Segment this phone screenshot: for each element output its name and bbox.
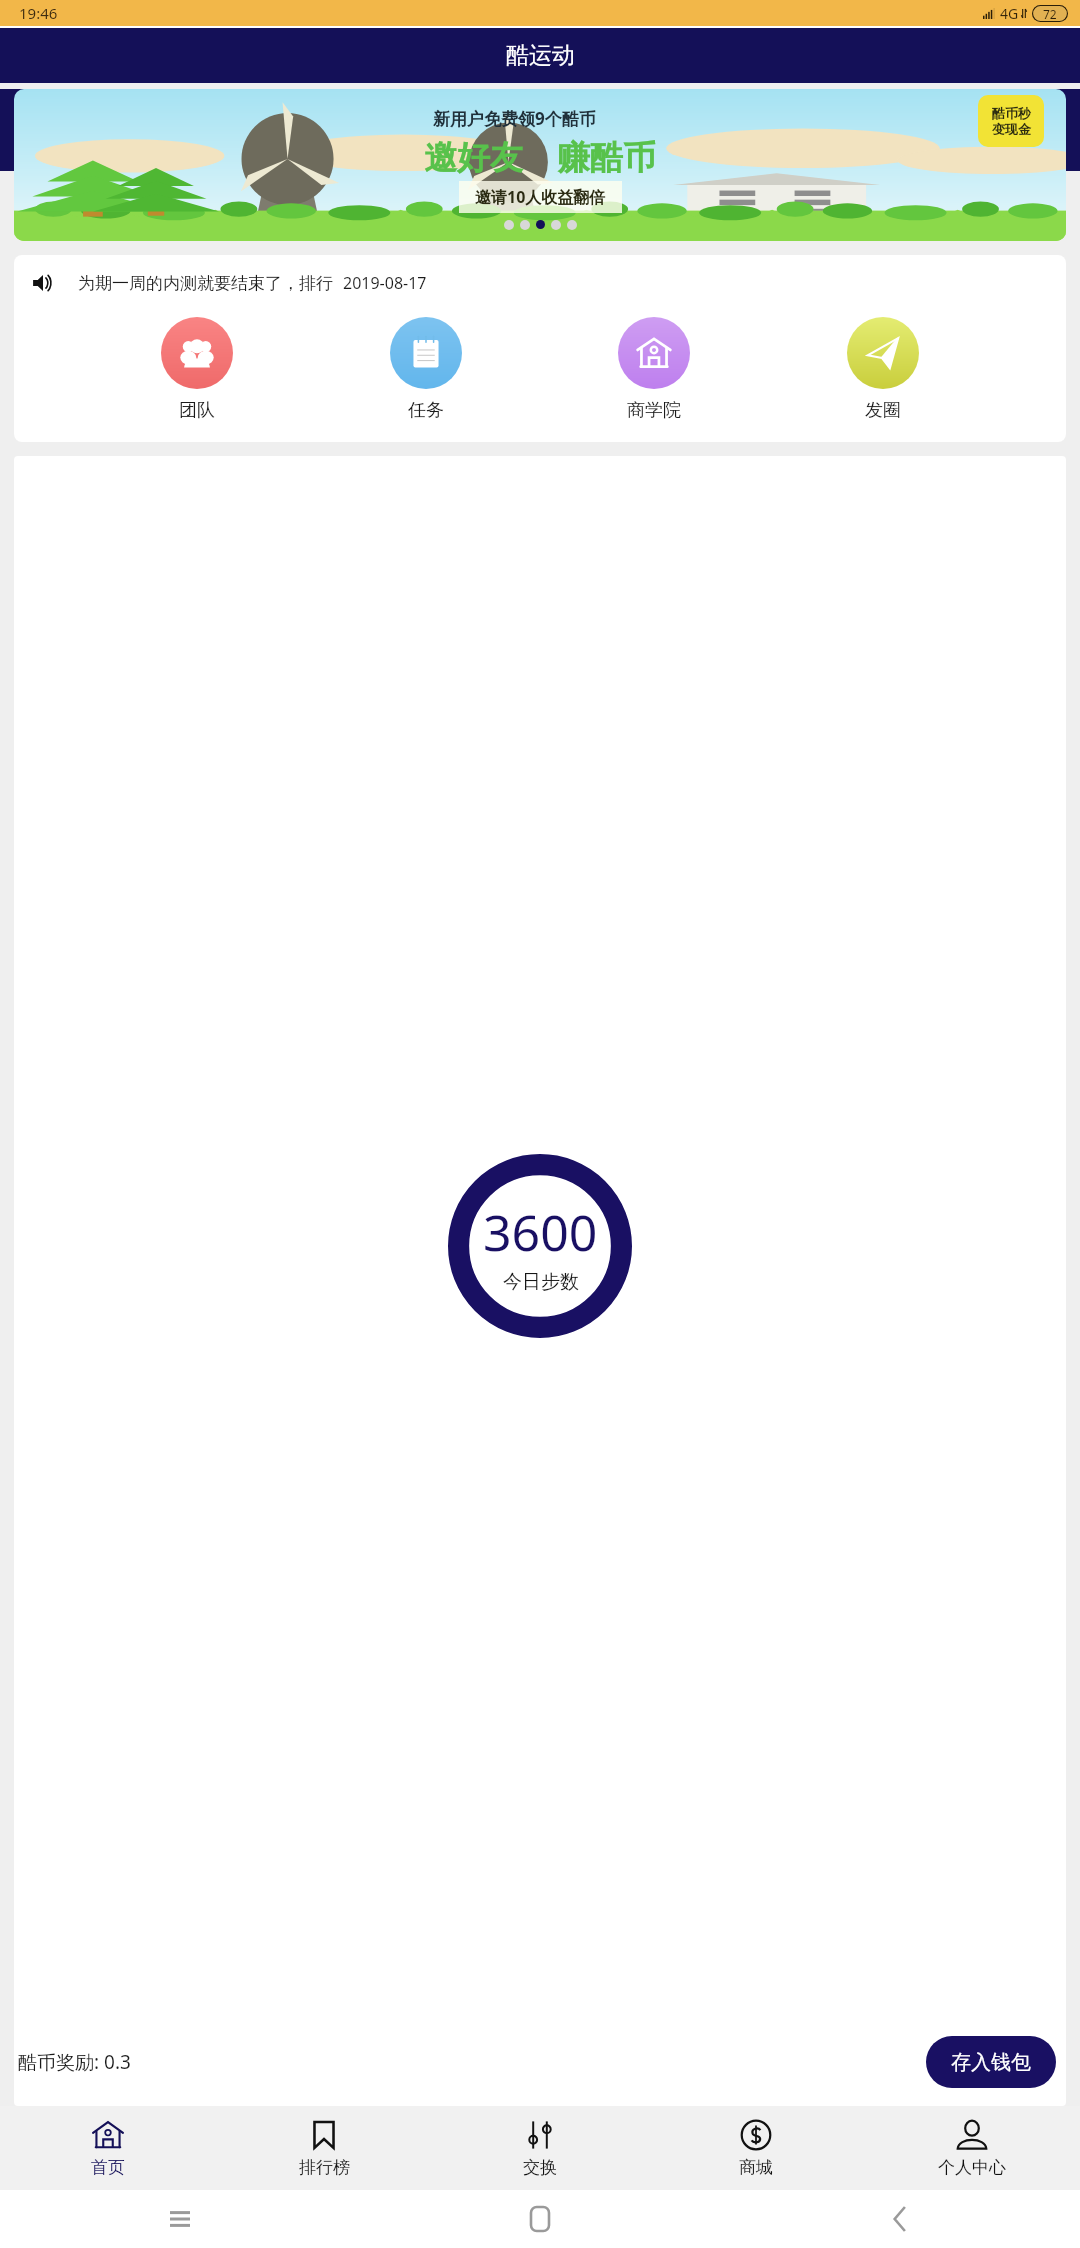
staticText: 酷币秒	[992, 105, 1031, 121]
staticText: 交换	[523, 2157, 557, 2178]
staticText: 存入钱包	[951, 2050, 1031, 2075]
staticText: 4G	[1000, 4, 1019, 23]
staticText: 为期一周的内测就要结束了，排行	[78, 273, 333, 294]
staticText: 首页	[91, 2157, 125, 2178]
staticText: 邀请10人收益翻倍	[475, 186, 606, 208]
button[interactable]: 商城	[648, 2106, 864, 2190]
button[interactable]: 团队	[151, 313, 243, 426]
staticText: 72	[1043, 6, 1057, 22]
staticText: 新用户免费领9个酷币	[433, 107, 596, 130]
staticText: 酷运动	[506, 41, 575, 70]
staticText: 排行榜	[299, 2157, 350, 2178]
button[interactable]: 交换	[432, 2106, 648, 2190]
staticText: 任务	[408, 399, 444, 422]
staticText: 商学院	[627, 399, 681, 422]
button[interactable]: Recent apps	[160, 2199, 200, 2239]
staticText: 3600	[483, 1198, 598, 1266]
staticText: 赚酷币	[557, 137, 656, 179]
button[interactable]: 任务	[380, 313, 472, 426]
button[interactable]: 存入钱包	[926, 2036, 1056, 2088]
button[interactable]: Back	[880, 2199, 920, 2239]
button[interactable]: Home	[520, 2199, 560, 2239]
staticText: 邀好友	[424, 137, 523, 179]
staticText: 个人中心	[938, 2157, 1006, 2178]
button[interactable]: 发圈	[837, 313, 929, 426]
button[interactable]: 商学院	[608, 313, 700, 426]
staticText: 今日步数	[503, 1270, 579, 1294]
button[interactable]: 首页	[0, 2106, 216, 2190]
staticText: 发圈	[865, 399, 901, 422]
button[interactable]: 为期一周的内测就要结束了，排行	[14, 255, 1066, 311]
button[interactable]: 个人中心	[864, 2106, 1080, 2190]
button[interactable]: 排行榜	[216, 2106, 432, 2190]
staticText: 2019-08-17	[343, 272, 427, 294]
staticText: 商城	[739, 2157, 773, 2178]
staticText: 团队	[179, 399, 215, 422]
staticText: 19:46	[19, 3, 58, 23]
staticText: 酷币奖励: 0.3	[18, 2049, 926, 2075]
staticText: 变现金	[992, 121, 1031, 137]
